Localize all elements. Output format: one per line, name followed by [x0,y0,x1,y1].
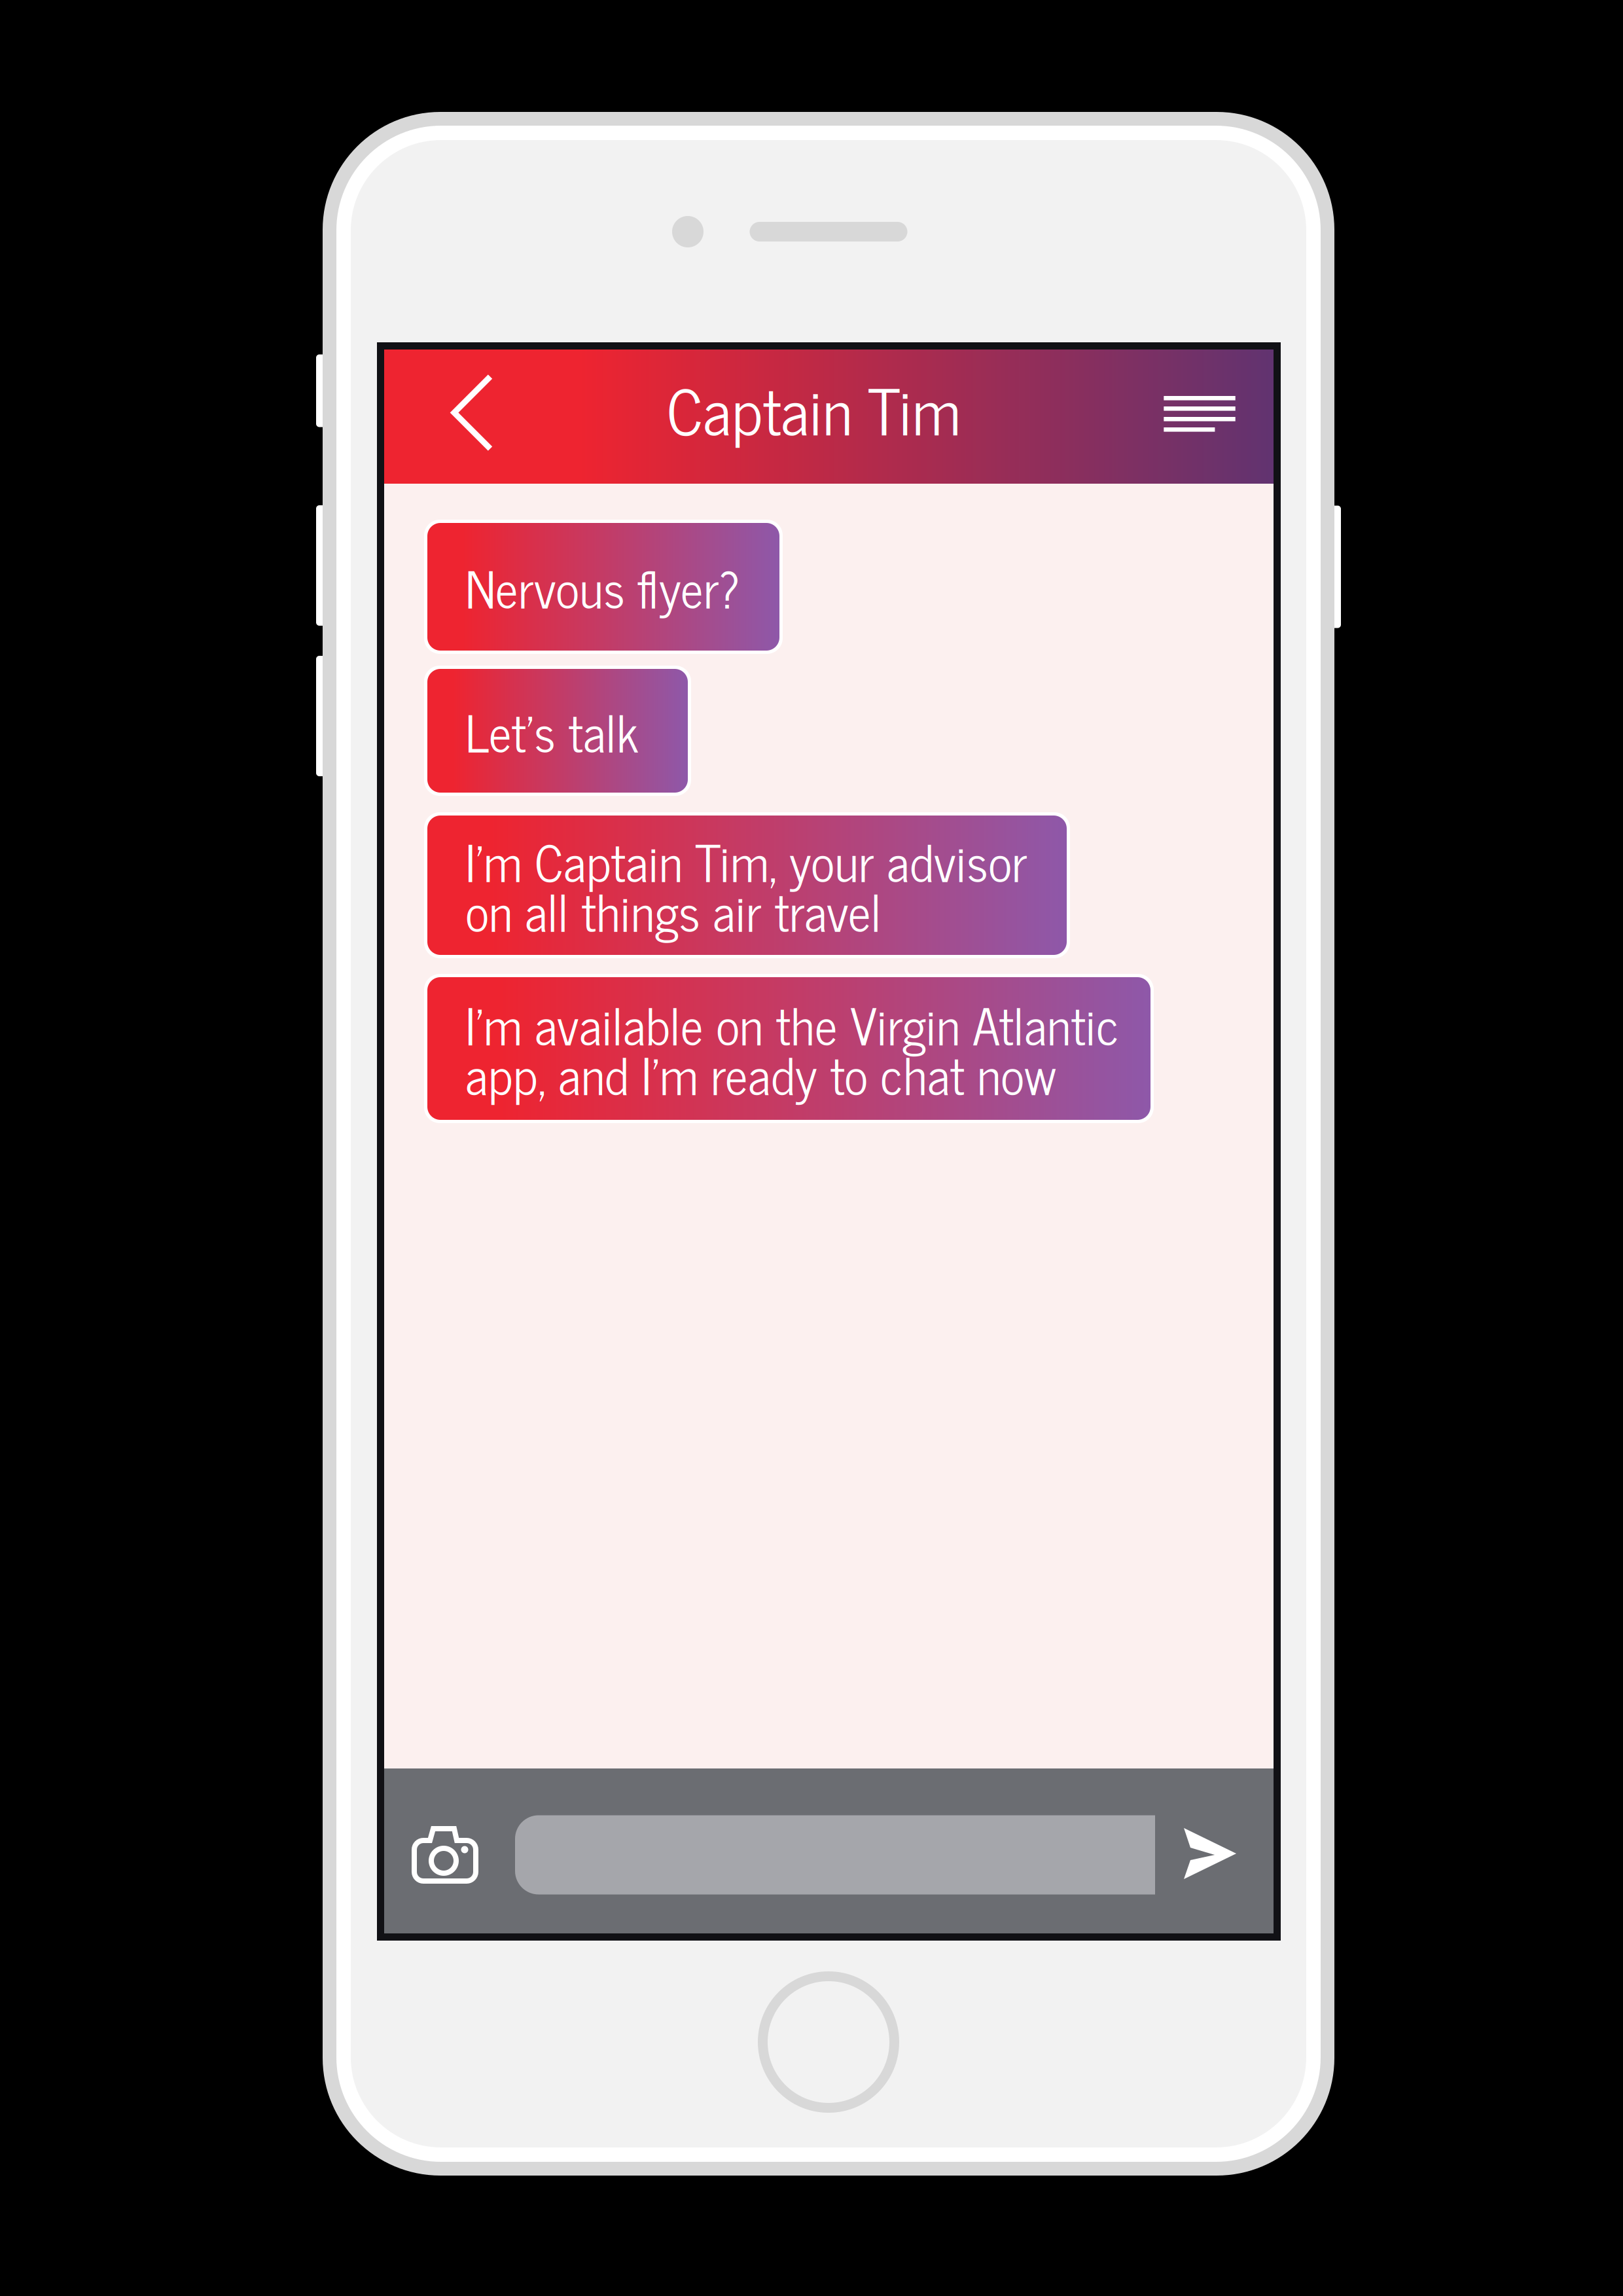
staticText: Captain Tim [667,356,961,460]
button[interactable]: Send [1160,1768,1274,1933]
button[interactable]: Menu [1135,350,1274,484]
staticText: app, and I’m ready to chat now [465,1032,1056,1114]
staticText: Let’s talk [465,690,639,772]
staticText: I’m available on the Virgin Atlantic [465,983,1119,1065]
staticText: Nervous flyer? [465,546,740,628]
staticText: on all things air travel [465,869,882,951]
staticText: I’m Captain Tim, your advisor [465,819,1027,901]
button[interactable]: Camera [384,1768,515,1933]
button[interactable]: Back [384,350,520,484]
